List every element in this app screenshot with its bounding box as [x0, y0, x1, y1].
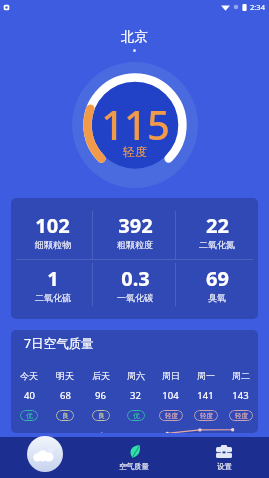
staticText: 优: [133, 412, 140, 420]
staticText: 40: [24, 389, 35, 402]
staticText: 空气质量: [119, 462, 149, 471]
staticText: 周六: [127, 370, 145, 381]
button[interactable]: 设置: [179, 437, 269, 478]
button[interactable]: 周一: [188, 370, 223, 421]
button[interactable]: 周日: [153, 370, 188, 421]
button[interactable]: 周二: [223, 370, 258, 421]
staticText: 115: [101, 97, 170, 151]
staticText: 1: [47, 265, 59, 292]
staticText: 143: [232, 389, 249, 402]
button[interactable]: 今天: [11, 370, 47, 421]
button[interactable]: 空气质量: [89, 437, 179, 478]
staticText: 细颗粒物: [35, 239, 71, 250]
staticText: 北京: [121, 28, 148, 45]
staticText: 68: [60, 389, 71, 402]
staticText: 7日空气质量: [24, 335, 94, 352]
staticText: 轻度: [200, 412, 213, 420]
staticText: 轻度: [235, 412, 248, 420]
staticText: 0.3: [121, 265, 150, 292]
staticText: 二氧化硫: [35, 292, 71, 303]
staticText: 周日: [162, 370, 180, 381]
staticText: 周一: [197, 370, 215, 381]
button[interactable]: 22: [176, 212, 258, 273]
button[interactable]: 天气: [0, 437, 89, 478]
button[interactable]: 后天: [83, 370, 118, 421]
button[interactable]: 明天: [47, 370, 83, 421]
staticText: 32: [130, 389, 141, 402]
staticText: 22: [206, 212, 229, 239]
button[interactable]: 周六: [118, 370, 153, 421]
button[interactable]: 392: [94, 212, 176, 273]
staticText: 69: [206, 265, 229, 292]
staticText: 96: [95, 389, 106, 402]
staticText: 良: [98, 412, 105, 420]
staticText: 良: [62, 412, 69, 420]
staticText: 后天: [92, 370, 110, 381]
staticText: 优: [26, 412, 33, 420]
staticText: 周二: [232, 370, 250, 381]
button[interactable]: 1: [11, 265, 94, 319]
button[interactable]: 0.3: [94, 265, 176, 319]
staticText: 今天: [20, 370, 38, 381]
staticText: 轻度: [165, 412, 178, 420]
staticText: 102: [35, 212, 70, 239]
staticText: 设置: [217, 462, 232, 471]
staticText: 104: [162, 389, 179, 402]
staticText: 粗颗粒度: [117, 239, 153, 250]
staticText: 392: [118, 212, 153, 239]
staticText: 明天: [56, 370, 74, 381]
button[interactable]: 102: [11, 212, 94, 273]
staticText: 轻度: [123, 144, 147, 159]
button[interactable]: 69: [176, 265, 258, 319]
staticText: 2:34: [250, 2, 265, 12]
staticText: 一氧化碳: [117, 292, 153, 303]
staticText: 141: [197, 389, 214, 402]
staticText: 二氧化氮: [199, 239, 235, 250]
staticText: 臭氧: [208, 292, 226, 303]
